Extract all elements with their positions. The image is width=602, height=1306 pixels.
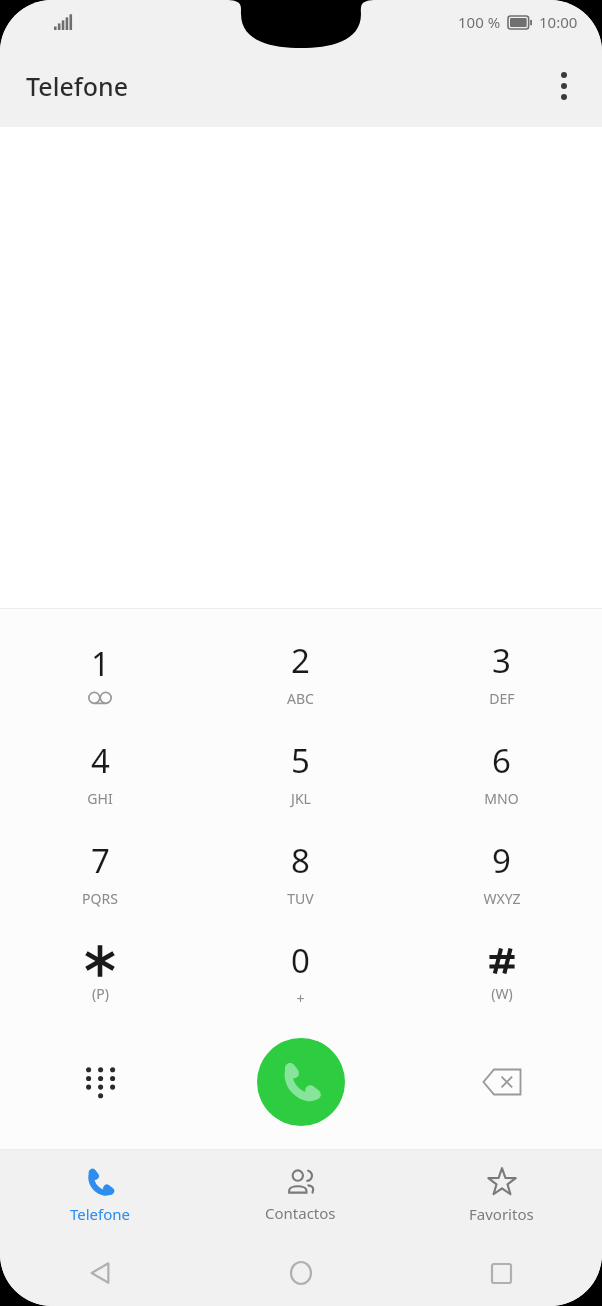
- staticText: PQRS: [82, 889, 118, 908]
- button[interactable]: 9: [401, 823, 602, 923]
- staticText: 3: [492, 638, 511, 683]
- button[interactable]: Favoritos: [401, 1150, 602, 1240]
- staticText: DEF: [489, 689, 515, 708]
- button[interactable]: Back: [0, 1240, 200, 1306]
- button[interactable]: 4: [0, 723, 200, 823]
- button[interactable]: (W): [401, 923, 602, 1023]
- button[interactable]: 0: [200, 923, 401, 1023]
- staticText: 0: [291, 938, 310, 983]
- button[interactable]: 7: [0, 823, 200, 923]
- staticText: Telefone: [26, 69, 128, 103]
- staticText: Contactos: [265, 1203, 336, 1223]
- staticText: 4: [91, 738, 110, 783]
- button[interactable]: 6: [401, 723, 602, 823]
- button[interactable]: 1: [0, 623, 200, 723]
- staticText: 2: [291, 638, 310, 683]
- button[interactable]: Hide keypad: [0, 1027, 200, 1137]
- staticText: 6: [492, 738, 511, 783]
- staticText: Favoritos: [469, 1204, 534, 1224]
- staticText: 8: [291, 838, 310, 883]
- staticText: 1: [91, 641, 110, 686]
- button[interactable]: Recent apps: [401, 1240, 602, 1306]
- button[interactable]: 8: [200, 823, 401, 923]
- button[interactable]: Backspace: [401, 1027, 602, 1137]
- button[interactable]: More options: [540, 62, 588, 110]
- staticText: 10:00: [539, 12, 578, 32]
- button[interactable]: Call: [257, 1038, 345, 1126]
- button[interactable]: 2: [200, 623, 401, 723]
- staticText: WXYZ: [483, 889, 521, 908]
- button[interactable]: Telefone: [0, 1150, 200, 1240]
- button[interactable]: 3: [401, 623, 602, 723]
- staticText: Telefone: [70, 1204, 131, 1224]
- staticText: 5: [291, 738, 310, 783]
- staticText: (W): [491, 984, 513, 1003]
- button[interactable]: (P): [0, 923, 200, 1023]
- staticText: (P): [92, 984, 109, 1003]
- staticText: JKL: [291, 789, 311, 808]
- button[interactable]: 5: [200, 723, 401, 823]
- staticText: ABC: [287, 689, 314, 708]
- staticText: +: [296, 989, 305, 1008]
- button[interactable]: Home: [200, 1240, 401, 1306]
- button[interactable]: Contactos: [200, 1150, 401, 1240]
- staticText: 100 %: [458, 12, 501, 32]
- staticText: 9: [492, 838, 511, 883]
- staticText: TUV: [287, 889, 314, 908]
- staticText: GHI: [87, 789, 113, 808]
- staticText: MNO: [484, 789, 519, 808]
- staticText: 7: [91, 838, 110, 883]
